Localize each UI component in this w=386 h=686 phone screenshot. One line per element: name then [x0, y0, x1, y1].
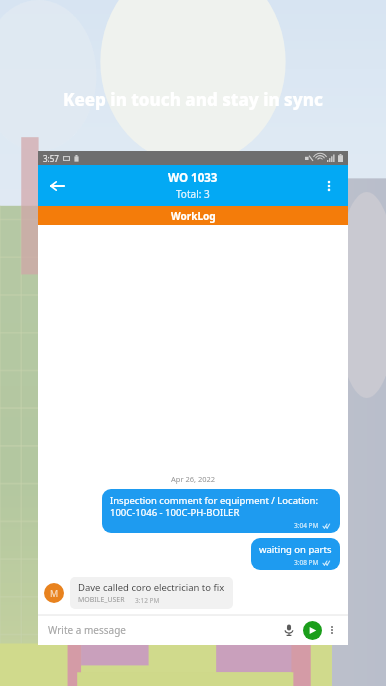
staticText: M: [50, 587, 59, 599]
button[interactable]: More options: [310, 167, 348, 205]
staticText: Keep in touch and stay in sync: [63, 88, 323, 111]
staticText: MOBILE_USER: [78, 595, 125, 605]
staticText: Apr 26, 2022: [171, 474, 216, 484]
staticText: Inspection comment for equipment / Locat…: [110, 494, 332, 519]
staticText: WO 1033: [168, 170, 218, 186]
staticText: waiting on parts: [259, 543, 332, 556]
button[interactable]: Back: [38, 167, 76, 205]
button[interactable]: Write a message: [48, 623, 278, 637]
button[interactable]: Voice message: [278, 619, 300, 641]
button[interactable]: WorkLog: [38, 206, 348, 225]
staticText: Write a message: [48, 623, 126, 637]
staticText: Dave called coro electrician to fix: [78, 581, 225, 594]
staticText: WorkLog: [171, 209, 216, 223]
staticText: 3:08 PM: [294, 558, 319, 567]
staticText: Total: 3: [176, 187, 210, 201]
staticText: 3:04 PM: [294, 521, 319, 530]
button[interactable]: More options: [322, 620, 342, 640]
button[interactable]: Send: [303, 621, 322, 640]
button[interactable]: Inspection comment for equipment / Locat…: [102, 489, 340, 533]
button[interactable]: waiting on parts: [251, 538, 340, 570]
staticText: 3:57: [43, 153, 59, 164]
staticText: 3:12 PM: [135, 596, 160, 605]
button[interactable]: Dave called coro electrician to fix: [70, 577, 233, 609]
